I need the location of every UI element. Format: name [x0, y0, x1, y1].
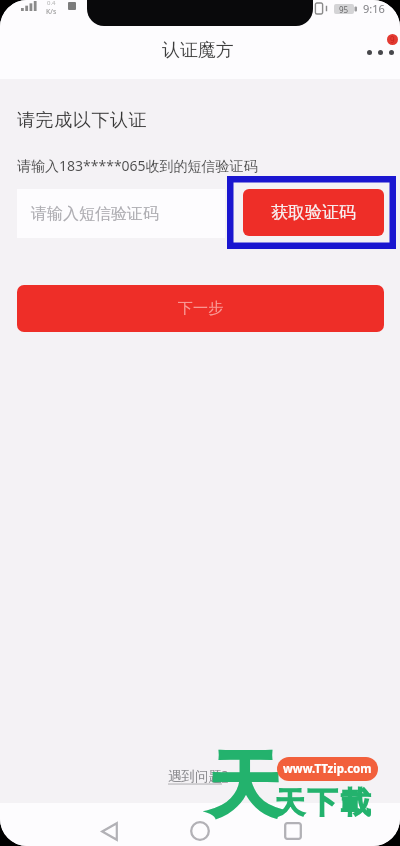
staticText: 请完成以下认证	[17, 109, 148, 132]
button[interactable]: 请输入短信验证码	[17, 189, 225, 238]
button[interactable]: More options	[355, 29, 399, 73]
staticText: 请输入183*****065收到的短信验证码	[17, 156, 258, 175]
staticText: K/s	[46, 7, 57, 17]
staticText: 请输入短信验证码	[31, 204, 159, 224]
button[interactable]: Back	[89, 811, 129, 846]
staticText: 认证魔方	[162, 39, 234, 62]
button[interactable]: 获取验证码	[243, 189, 384, 236]
button[interactable]: Home	[180, 811, 220, 846]
staticText: 遇到问题?	[168, 767, 228, 785]
button[interactable]: 遇到问题?	[162, 764, 234, 788]
staticText: 获取验证码	[271, 202, 356, 223]
staticText: www.TTzip.com	[283, 761, 372, 777]
staticText: 天	[208, 741, 280, 832]
staticText: 9:16	[363, 1, 385, 16]
button[interactable]: 下一步	[17, 285, 384, 332]
staticText: 9	[390, 34, 395, 45]
staticText: 天下載	[273, 784, 372, 822]
button[interactable]: Recents	[273, 811, 313, 846]
staticText: 下一步	[178, 299, 223, 318]
staticText: 95	[339, 4, 349, 14]
staticText: 0.4	[47, 0, 56, 7]
